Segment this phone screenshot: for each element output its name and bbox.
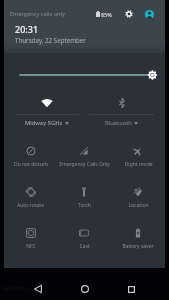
staticText: Geektech.in (2, 285, 30, 292)
button[interactable]: Home (75, 279, 95, 299)
button[interactable]: NFC (4, 221, 57, 262)
staticText: 20:31 (15, 23, 39, 35)
button[interactable]: Bluetooth (84, 89, 159, 139)
button[interactable]: Torch (57, 180, 111, 221)
button[interactable]: Settings (123, 8, 135, 20)
staticText: Battery saver (122, 243, 154, 250)
staticText: Flight mode (124, 161, 153, 168)
button[interactable]: Flight mode (111, 139, 165, 180)
button[interactable]: Midway 5GHz (10, 89, 84, 139)
button[interactable]: Cast (57, 221, 111, 262)
staticText: Location (128, 202, 149, 209)
button[interactable]: Recents (121, 279, 141, 299)
staticText: Cast (79, 243, 90, 250)
button[interactable]: Auto-rotate (4, 180, 57, 221)
staticText: Emergency calls only (10, 10, 65, 18)
button[interactable]: User (145, 10, 154, 19)
button[interactable]: Location (111, 180, 165, 221)
staticText: Midway 5GHz (25, 119, 63, 127)
staticText: 85% (101, 11, 112, 18)
button[interactable]: Do not disturb (4, 139, 57, 180)
staticText: Do not disturb (14, 161, 48, 168)
button[interactable]: Emergency Calls Only (57, 139, 111, 180)
staticText: Torch (78, 202, 91, 209)
staticText: NFC (26, 243, 36, 250)
staticText: Bluetooth (105, 119, 132, 127)
staticText: Auto-rotate (17, 202, 44, 209)
button[interactable]: Battery saver (111, 221, 165, 262)
staticText: Thursday, 22 September (15, 36, 86, 44)
staticText: Emergency Calls Only (59, 161, 110, 168)
button[interactable]: Back (28, 279, 48, 299)
button[interactable]: Brightness (4, 68, 165, 82)
